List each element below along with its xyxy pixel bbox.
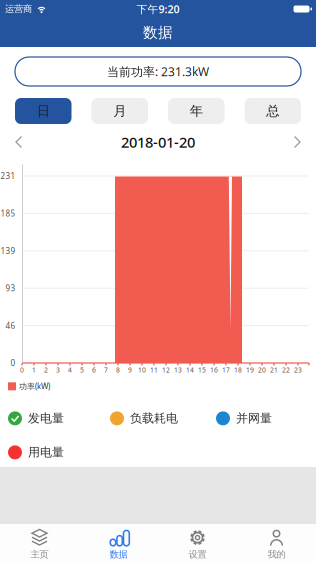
button[interactable]: 用电量 — [8, 445, 64, 460]
staticText: 下午9:20 — [136, 2, 179, 16]
staticText: 总 — [266, 103, 279, 119]
button[interactable]: 数据 — [79, 526, 158, 560]
staticText: 月 — [113, 103, 126, 119]
staticText: 19 — [246, 366, 254, 374]
staticText: 231 — [0, 171, 15, 181]
staticText: 发电量 — [28, 411, 64, 426]
staticText: 数据 — [143, 23, 173, 41]
staticText: 139 — [0, 245, 15, 256]
staticText: 我的 — [267, 549, 285, 560]
staticText: 9 — [128, 366, 132, 374]
staticText: 设置 — [188, 549, 206, 560]
button[interactable]: 年 — [168, 98, 224, 124]
staticText: 当前功率: 231.3kW — [107, 63, 209, 79]
button[interactable]: 月 — [91, 98, 148, 124]
staticText: 8 — [116, 366, 120, 374]
button[interactable]: Next day — [293, 131, 316, 153]
staticText: 22 — [282, 366, 290, 374]
staticText: 18 — [234, 366, 242, 374]
staticText: 4 — [68, 366, 72, 374]
staticText: 5 — [80, 366, 84, 374]
staticText: 3 — [56, 366, 60, 374]
staticText: 2 — [44, 366, 48, 374]
staticText: 年 — [190, 103, 203, 119]
button[interactable]: 日 — [15, 98, 71, 124]
staticText: 2018-01-20 — [121, 132, 195, 152]
staticText: 12 — [162, 366, 170, 374]
staticText: 日 — [37, 103, 50, 119]
button[interactable]: 发电量 — [8, 411, 64, 426]
staticText: 14 — [186, 366, 194, 374]
staticText: 11 — [150, 366, 158, 374]
button[interactable]: 设置 — [158, 526, 237, 560]
staticText: 运营商 — [5, 3, 32, 15]
staticText: 15 — [198, 366, 206, 374]
staticText: 46 — [5, 320, 15, 331]
staticText: 用电量 — [28, 445, 64, 460]
staticText: 93 — [5, 283, 15, 293]
staticText: 21 — [270, 366, 278, 374]
button[interactable]: 主页 — [0, 526, 79, 560]
button[interactable]: 总 — [244, 98, 301, 124]
staticText: 10 — [138, 366, 146, 374]
staticText: 23 — [294, 366, 302, 374]
staticText: 13 — [174, 366, 182, 374]
staticText: 20 — [258, 366, 266, 374]
staticText: 0 — [20, 366, 24, 374]
staticText: 功率(kW) — [19, 381, 50, 392]
button[interactable]: Previous day — [0, 131, 23, 153]
staticText: 0 — [10, 358, 15, 368]
staticText: 6 — [92, 366, 96, 374]
staticText: 数据 — [109, 549, 127, 560]
staticText: 负载耗电 — [130, 411, 178, 426]
staticText: 17 — [222, 366, 230, 374]
button[interactable]: 我的 — [237, 526, 316, 560]
staticText: 1 — [32, 366, 36, 374]
staticText: 7 — [104, 366, 108, 374]
button[interactable]: 负载耗电 — [110, 411, 178, 426]
staticText: 并网量 — [236, 411, 272, 426]
staticText: 16 — [210, 366, 218, 374]
staticText: 主页 — [30, 549, 48, 560]
staticText: 185 — [0, 208, 15, 219]
button[interactable]: 并网量 — [216, 411, 272, 426]
